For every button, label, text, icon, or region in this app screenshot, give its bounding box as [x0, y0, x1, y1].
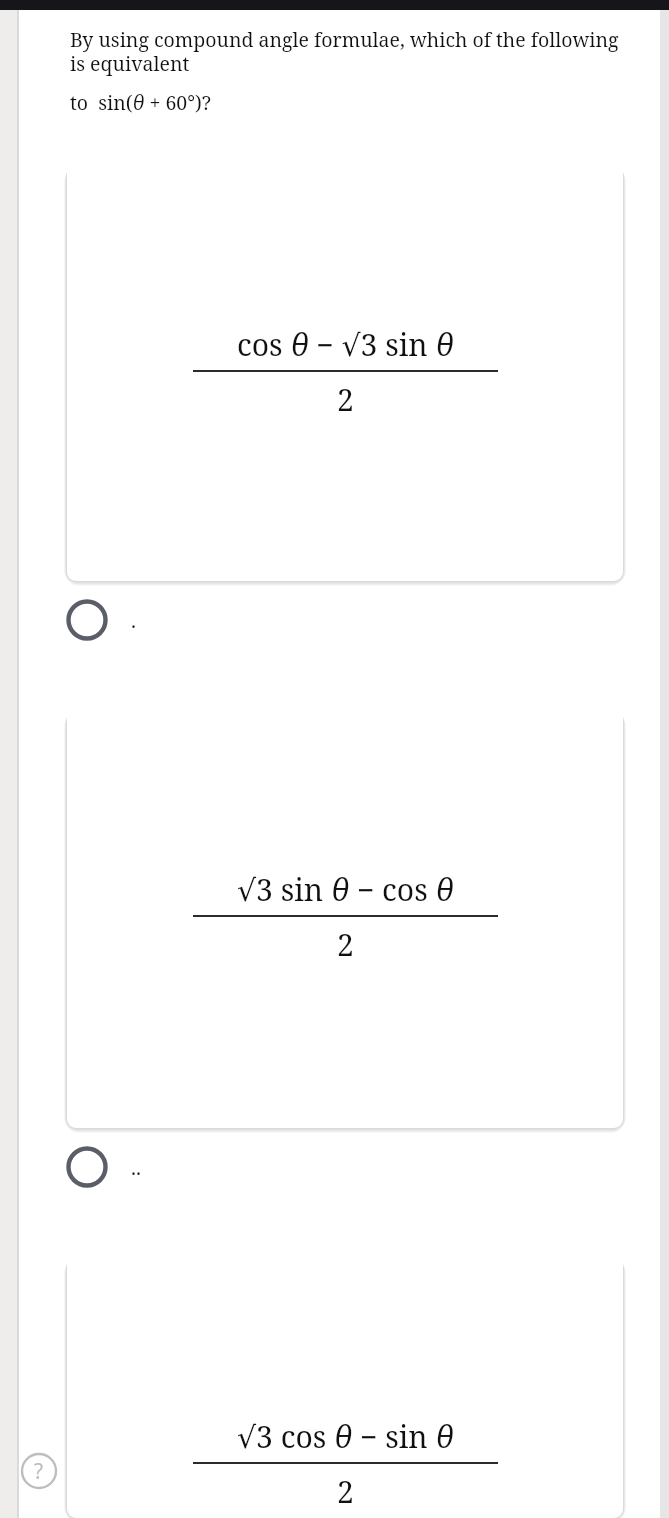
button[interactable]: . [19, 581, 660, 659]
button[interactable]: .. [19, 1128, 660, 1206]
button[interactable]: Help [20, 1452, 58, 1490]
staticText: 2 [337, 379, 354, 420]
staticText: cos θ − √3 sin θ [237, 324, 454, 365]
staticText: By using compound angle formulae, which … [70, 26, 632, 77]
staticText: 2 [337, 1471, 354, 1512]
staticText: to sin(θ + 60°)? [70, 89, 212, 116]
staticText: ? [34, 1457, 44, 1486]
button[interactable]: √3 cos θ − sin θ [67, 1256, 623, 1518]
button[interactable]: cos θ − √3 sin θ [67, 164, 623, 581]
button[interactable]: √3 sin θ − cos θ [67, 709, 623, 1128]
staticText: . [131, 607, 136, 634]
staticText: 2 [337, 924, 354, 965]
staticText: √3 cos θ − sin θ [237, 1416, 454, 1457]
staticText: .. [131, 1154, 141, 1181]
staticText: √3 sin θ − cos θ [237, 869, 454, 910]
